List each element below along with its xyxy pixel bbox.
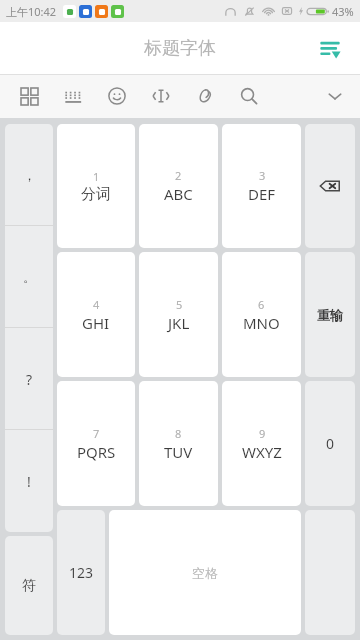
button[interactable]: 空格 <box>109 510 301 635</box>
button[interactable]: 1 <box>57 124 135 248</box>
button[interactable]: 123 <box>57 510 105 635</box>
staticText: PQRS <box>77 442 116 462</box>
staticText: WXYZ <box>242 442 282 462</box>
button[interactable]: ? <box>5 328 53 430</box>
button[interactable]: 符 <box>5 536 53 635</box>
button[interactable]: 4 <box>57 252 135 377</box>
staticText: 8 <box>175 426 182 441</box>
staticText: 43% <box>332 4 354 19</box>
staticText: 2 <box>175 168 182 183</box>
button[interactable]: 8 <box>139 381 218 506</box>
staticText: MNO <box>243 313 280 333</box>
staticText: 3 <box>259 168 266 183</box>
staticText: 。 <box>23 269 36 285</box>
staticText: 0 <box>326 434 335 453</box>
staticText: GHI <box>82 313 110 333</box>
button[interactable]: 9 <box>222 381 301 506</box>
button[interactable]: ， <box>5 124 53 226</box>
button[interactable]: Apps <box>14 81 44 111</box>
staticText: ! <box>27 472 31 491</box>
button[interactable]: Search <box>234 81 264 111</box>
staticText: 符 <box>22 577 36 595</box>
staticText: 9 <box>259 426 266 441</box>
button[interactable]: Keyboard <box>58 81 88 111</box>
button[interactable]: Clipboard <box>190 81 220 111</box>
button[interactable]: 重输 <box>305 252 355 377</box>
button[interactable]: 0 <box>305 381 355 506</box>
button[interactable]: Backspace <box>305 124 355 248</box>
button[interactable]: 3 <box>222 124 301 248</box>
button[interactable]: ! <box>5 430 53 532</box>
staticText: 空格 <box>192 565 218 581</box>
staticText: JKL <box>168 313 190 333</box>
button[interactable]: Hide keyboard <box>320 81 350 111</box>
button[interactable]: 7 <box>57 381 135 506</box>
staticText: ABC <box>164 184 193 204</box>
button[interactable]: Emoji <box>102 81 132 111</box>
staticText: 123 <box>69 563 94 582</box>
staticText: 分词 <box>81 185 111 204</box>
button[interactable]: 6 <box>222 252 301 377</box>
staticText: 标题字体 <box>144 37 216 60</box>
button[interactable]: 2 <box>139 124 218 248</box>
staticText: 1 <box>93 169 100 184</box>
staticText: 4 <box>93 297 100 312</box>
staticText: 5 <box>176 297 183 312</box>
button[interactable]: 。 <box>5 226 53 328</box>
staticText: DEF <box>248 184 276 204</box>
staticText: 上午10:42 <box>6 4 57 19</box>
staticText: 7 <box>93 426 100 441</box>
staticText: 重输 <box>317 307 343 323</box>
staticText: 6 <box>258 297 265 312</box>
button[interactable]: 5 <box>139 252 218 377</box>
button[interactable]: Cursor <box>146 81 176 111</box>
button[interactable]: Menu <box>308 26 352 70</box>
staticText: TUV <box>164 442 193 462</box>
staticText: ， <box>23 167 36 183</box>
staticText: ? <box>26 370 33 389</box>
